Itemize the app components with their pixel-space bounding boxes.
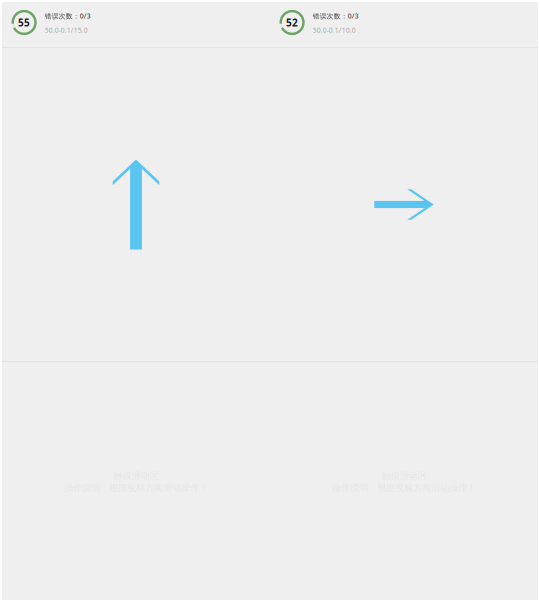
button[interactable]: 52	[270, 2, 538, 47]
staticText: 错误次数：0/3	[45, 11, 91, 20]
staticText: 55	[18, 16, 30, 29]
button[interactable]: 视标	[2, 48, 270, 361]
button[interactable]: 55	[2, 2, 270, 47]
staticText: 错误次数：0/3	[313, 11, 359, 20]
staticText: 52	[286, 16, 298, 29]
staticText: 50.0-0.1/10.0	[313, 25, 356, 35]
staticText: 50.0-0.1/15.0	[45, 25, 88, 35]
button[interactable]: 视标	[270, 48, 538, 361]
